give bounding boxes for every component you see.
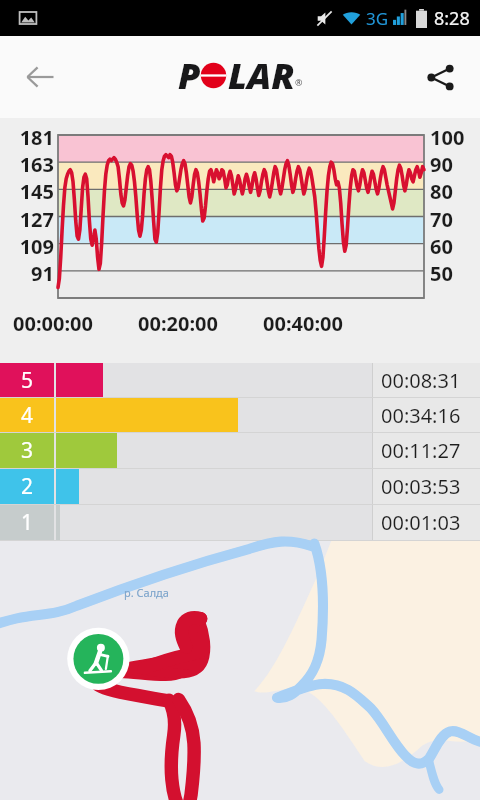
staticText: 00:00:00 xyxy=(13,310,93,337)
button[interactable]: 2 xyxy=(0,469,480,504)
staticText: 163 xyxy=(2,151,54,178)
button[interactable]: 4 xyxy=(0,398,480,432)
staticText: 100 xyxy=(430,124,480,151)
staticText: 60 xyxy=(430,233,480,260)
staticText: ® xyxy=(295,76,303,88)
staticText: 00:08:31 xyxy=(381,367,461,394)
staticText: 145 xyxy=(2,178,54,205)
staticText: 2 xyxy=(21,472,34,501)
staticText: 00:03:53 xyxy=(381,473,461,500)
staticText: LAR xyxy=(228,51,295,100)
staticText: 00:40:00 xyxy=(263,310,343,337)
button[interactable]: 3 xyxy=(0,433,480,468)
staticText: 91 xyxy=(2,260,54,287)
staticText: р. Салда xyxy=(124,585,169,600)
button[interactable]: 1 xyxy=(0,505,480,540)
staticText: 181 xyxy=(2,124,54,151)
staticText: 109 xyxy=(2,233,54,260)
staticText: P xyxy=(178,51,201,100)
staticText: 5 xyxy=(21,366,34,395)
staticText: 00:34:16 xyxy=(381,402,461,429)
staticText: 70 xyxy=(430,206,480,233)
staticText: 80 xyxy=(430,178,480,205)
button[interactable]: Share xyxy=(414,51,466,103)
staticText: 00:01:03 xyxy=(381,509,461,536)
staticText: 00:11:27 xyxy=(381,437,461,464)
staticText: 50 xyxy=(430,260,480,287)
staticText: 4 xyxy=(21,401,34,430)
staticText: 1 xyxy=(21,508,34,537)
staticText: 3 xyxy=(21,436,34,465)
staticText: 90 xyxy=(430,151,480,178)
button[interactable]: Route map xyxy=(0,541,480,800)
staticText: 00:20:00 xyxy=(138,310,218,337)
staticText: 8:28 xyxy=(434,6,470,31)
button[interactable]: Back xyxy=(14,51,66,103)
button[interactable]: 5 xyxy=(0,363,480,397)
staticText: 3G xyxy=(366,7,389,30)
staticText: 127 xyxy=(2,206,54,233)
